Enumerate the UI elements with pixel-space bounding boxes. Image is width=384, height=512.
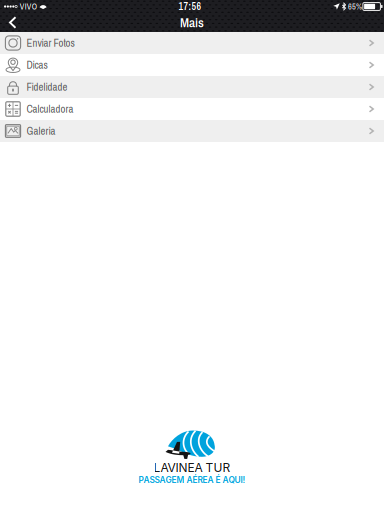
staticText: Galeria xyxy=(26,124,55,138)
staticText: PASSAGEM AÉREA É AQUI! xyxy=(138,475,245,485)
staticText: 65% xyxy=(348,1,362,12)
staticText: VIVO xyxy=(20,1,37,12)
staticText: Mais xyxy=(180,13,204,31)
button[interactable]: Fidelidade xyxy=(0,76,384,98)
staticText: LAVINEA TUR xyxy=(153,460,230,475)
button[interactable]: Dicas xyxy=(0,54,384,76)
button[interactable]: Calculadora xyxy=(0,98,384,120)
staticText: Dicas xyxy=(26,58,47,72)
staticText: 17:56 xyxy=(179,0,202,13)
button[interactable]: Enviar Fotos xyxy=(0,32,384,54)
staticText: Fidelidade xyxy=(26,80,67,94)
staticText: Enviar Fotos xyxy=(26,36,74,50)
button[interactable]: Galeria xyxy=(0,120,384,142)
staticText: Calculadora xyxy=(26,102,73,116)
button[interactable]: Back xyxy=(0,13,30,32)
